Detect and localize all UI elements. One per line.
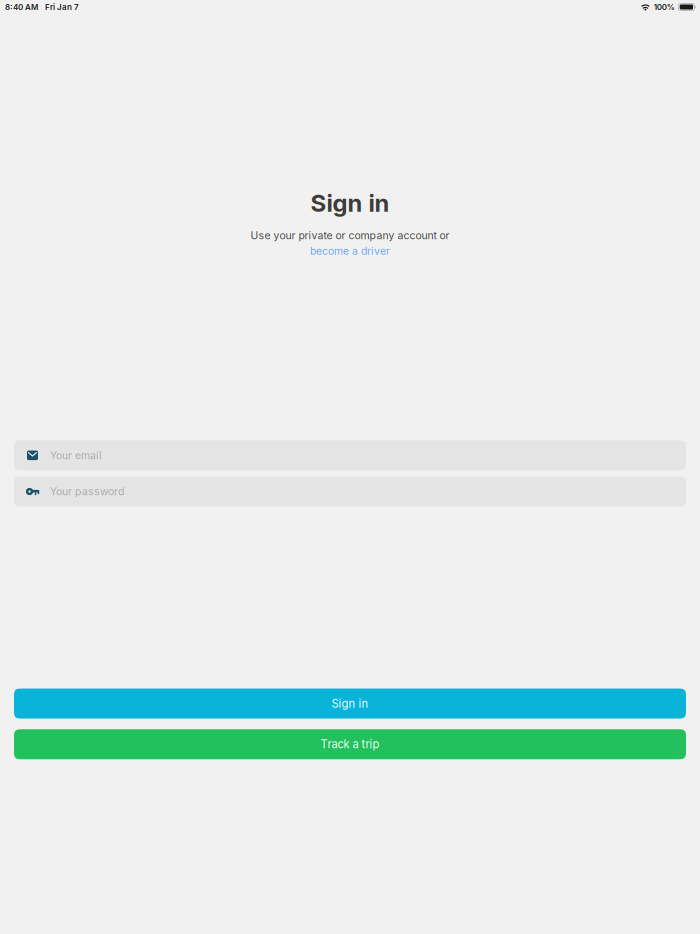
button[interactable]: Your password <box>14 477 686 507</box>
staticText: Sign in <box>310 188 389 217</box>
button[interactable]: become a driver <box>310 242 390 257</box>
staticText: Use your private or company account or <box>250 229 449 242</box>
staticText: 100% <box>654 2 675 12</box>
staticText: Sign in <box>331 697 368 710</box>
staticText: Track a trip <box>320 737 379 751</box>
button[interactable]: Your email <box>14 440 686 470</box>
staticText: Fri Jan 7 <box>45 2 79 12</box>
button[interactable]: Track a trip <box>14 729 686 759</box>
button[interactable]: Sign in <box>14 689 686 719</box>
staticText: become a driver <box>310 245 390 257</box>
staticText: 8:40 AM <box>5 2 38 12</box>
staticText: Your password <box>50 485 124 498</box>
staticText: Your email <box>50 449 102 462</box>
